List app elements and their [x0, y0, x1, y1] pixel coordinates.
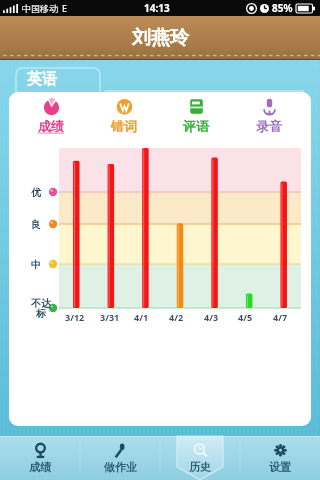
staticText: 英语	[27, 70, 57, 89]
staticText: 录音	[256, 118, 282, 134]
staticText: 4/3	[204, 311, 219, 323]
staticText: 做作业	[104, 460, 137, 474]
staticText: E	[62, 2, 68, 14]
staticText: 3/12	[65, 311, 85, 323]
staticText: 14:13	[144, 1, 170, 15]
staticText: 4/7	[273, 311, 288, 323]
button[interactable]: Grades	[0, 436, 80, 480]
staticText: 良	[31, 218, 41, 231]
staticText: 刘燕玲	[132, 26, 189, 50]
button[interactable]: 评语	[165, 98, 227, 144]
staticText: 85%	[272, 1, 293, 15]
staticText: 历史	[189, 460, 211, 474]
staticText: 设置	[269, 460, 291, 474]
staticText: 4/5	[238, 311, 253, 323]
button[interactable]: 错词	[93, 98, 155, 144]
staticText: 评语	[183, 118, 209, 134]
button[interactable]: Settings	[240, 436, 320, 480]
button[interactable]: Homework	[80, 436, 160, 480]
staticText: 中国移动	[22, 3, 58, 14]
staticText: 3/31	[100, 311, 120, 323]
staticText: 优	[31, 186, 41, 199]
button[interactable]: History	[160, 436, 240, 480]
staticText: 4/1	[134, 311, 149, 323]
staticText: 成绩	[29, 460, 51, 474]
staticText: 中	[31, 258, 41, 271]
staticText: 成绩	[38, 118, 64, 134]
button[interactable]: 录音	[238, 98, 300, 144]
button[interactable]: 成绩	[20, 98, 82, 144]
staticText: 不达 标	[31, 297, 51, 320]
staticText: 错词	[111, 118, 137, 134]
staticText: 4/2	[169, 311, 184, 323]
